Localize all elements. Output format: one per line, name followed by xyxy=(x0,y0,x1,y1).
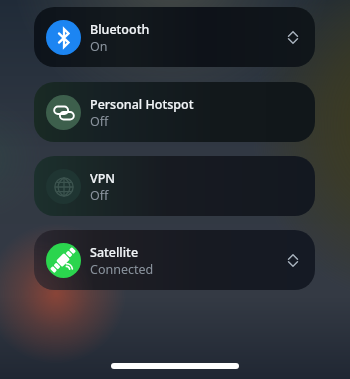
button[interactable]: Expand xyxy=(286,251,300,269)
staticText: Personal Hotspot xyxy=(90,96,194,113)
staticText: Off xyxy=(90,113,109,130)
button[interactable]: VPN xyxy=(34,156,315,216)
staticText: On xyxy=(90,38,108,55)
button[interactable]: Satellite xyxy=(34,230,315,290)
staticText: Off xyxy=(90,187,109,204)
button[interactable]: Expand xyxy=(286,28,300,46)
button[interactable]: Personal Hotspot xyxy=(34,82,315,142)
staticText: Bluetooth xyxy=(90,21,150,38)
staticText: VPN xyxy=(90,170,116,187)
button[interactable]: Bluetooth xyxy=(34,7,315,67)
staticText: Connected xyxy=(90,261,154,278)
staticText: Satellite xyxy=(90,244,139,261)
